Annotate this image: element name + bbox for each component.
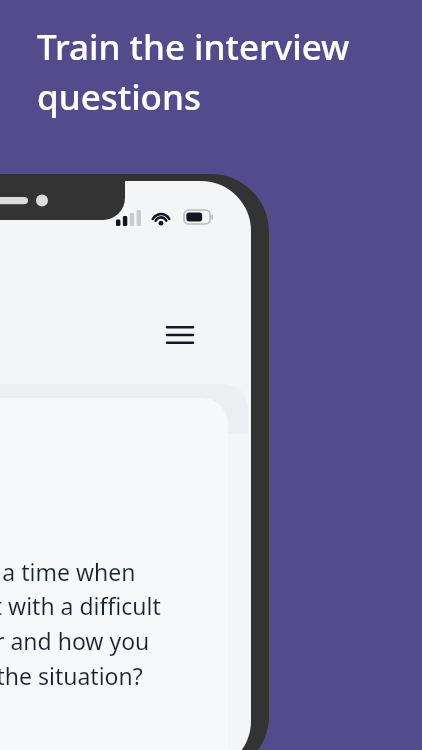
button[interactable]: Menu xyxy=(158,317,202,361)
staticText: Train the interview questions xyxy=(37,23,350,120)
staticText: Describe a time when you dealt with a di… xyxy=(0,556,161,692)
button[interactable]: Describe a time when you dealt with a di… xyxy=(0,398,228,750)
